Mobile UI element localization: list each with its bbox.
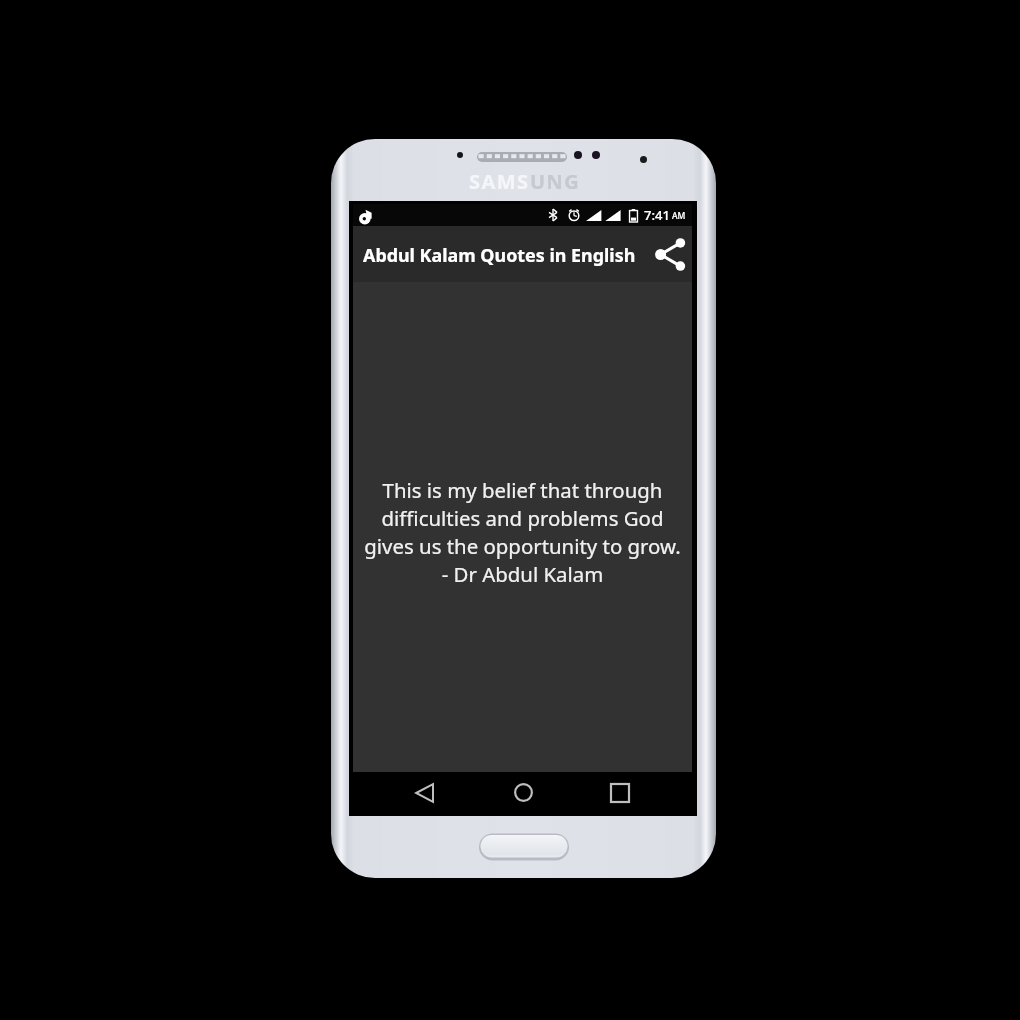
staticText: AM bbox=[672, 210, 686, 222]
staticText: 7:41 bbox=[644, 206, 670, 224]
button[interactable]: Recent apps bbox=[594, 772, 646, 813]
button[interactable]: Home button bbox=[478, 832, 570, 861]
staticText: UNG bbox=[530, 168, 581, 195]
button[interactable]: Back bbox=[399, 772, 451, 813]
staticText: Abdul Kalam Quotes in English bbox=[363, 243, 636, 267]
button[interactable]: Home bbox=[497, 772, 549, 813]
staticText: This is my belief that through difficult… bbox=[353, 476, 692, 588]
button[interactable]: Share bbox=[648, 232, 692, 276]
staticText: SAMS bbox=[469, 168, 530, 195]
